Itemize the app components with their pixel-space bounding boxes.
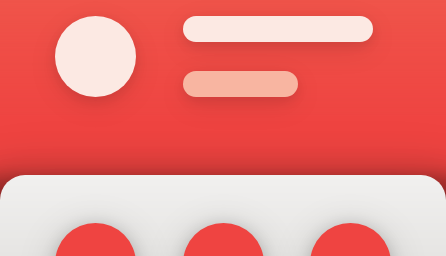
other: Profile avatar: [55, 16, 136, 97]
button[interactable]: Action: [55, 223, 136, 256]
button[interactable]: Action: [310, 223, 391, 256]
button[interactable]: Profile avatar: [0, 0, 446, 113]
button[interactable]: Action: [183, 223, 264, 256]
